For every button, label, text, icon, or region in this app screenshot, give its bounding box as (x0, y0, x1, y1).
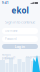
staticText: Username (5, 29, 18, 33)
staticText: Password (5, 37, 17, 41)
staticText: Login (14, 44, 25, 49)
button[interactable]: Login (0, 44, 40, 49)
button[interactable]: Register (26, 55, 38, 58)
staticText: Sign in to continue (5, 19, 35, 25)
staticText: Forgot password? (2, 53, 15, 60)
button[interactable]: Forgot password? (2, 53, 15, 60)
staticText: ekol (11, 5, 28, 16)
staticText: Register (26, 55, 38, 58)
staticText: 9:41 (2, 1, 9, 5)
